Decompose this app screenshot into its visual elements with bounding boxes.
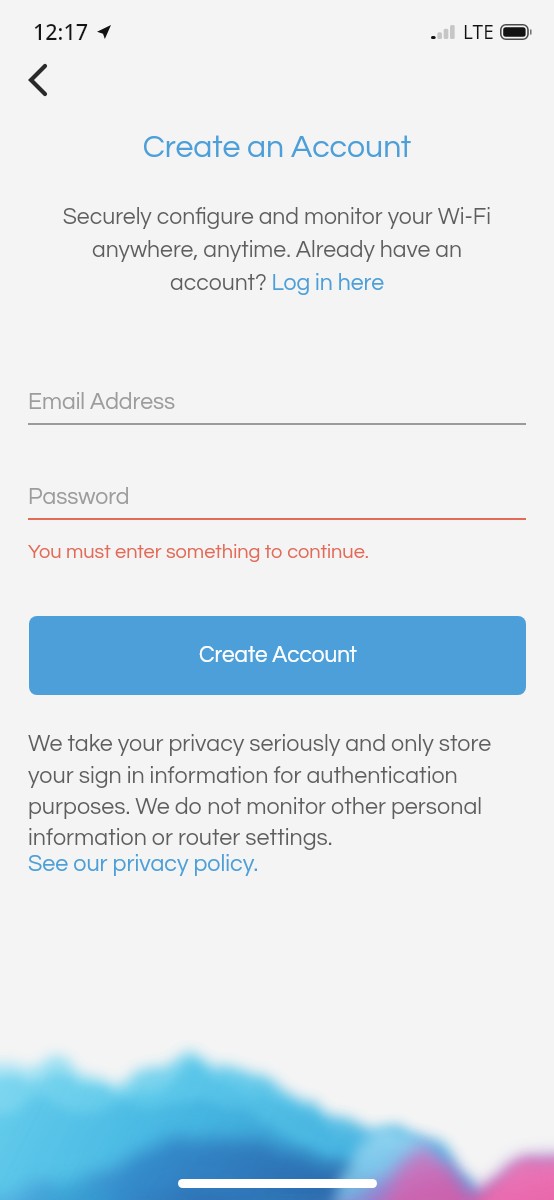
staticText: Password <box>28 485 130 509</box>
staticText: We take your privacy seriously and only … <box>28 732 528 850</box>
button[interactable]: Back <box>10 52 66 108</box>
staticText: Create an Account <box>0 131 554 164</box>
staticText: Email Address <box>28 390 176 414</box>
staticText: You must enter something to continue. <box>28 542 369 563</box>
button[interactable]: See our privacy policy. <box>28 852 259 876</box>
staticText: 12:17 <box>33 17 89 46</box>
staticText: Securely configure and monitor your Wi-F… <box>52 205 502 295</box>
button[interactable]: Email Address <box>28 390 526 425</box>
staticText: LTE <box>463 19 494 45</box>
staticText: Create Account <box>199 644 357 667</box>
button[interactable]: Create Account <box>29 616 526 695</box>
button[interactable]: Password <box>28 485 526 520</box>
